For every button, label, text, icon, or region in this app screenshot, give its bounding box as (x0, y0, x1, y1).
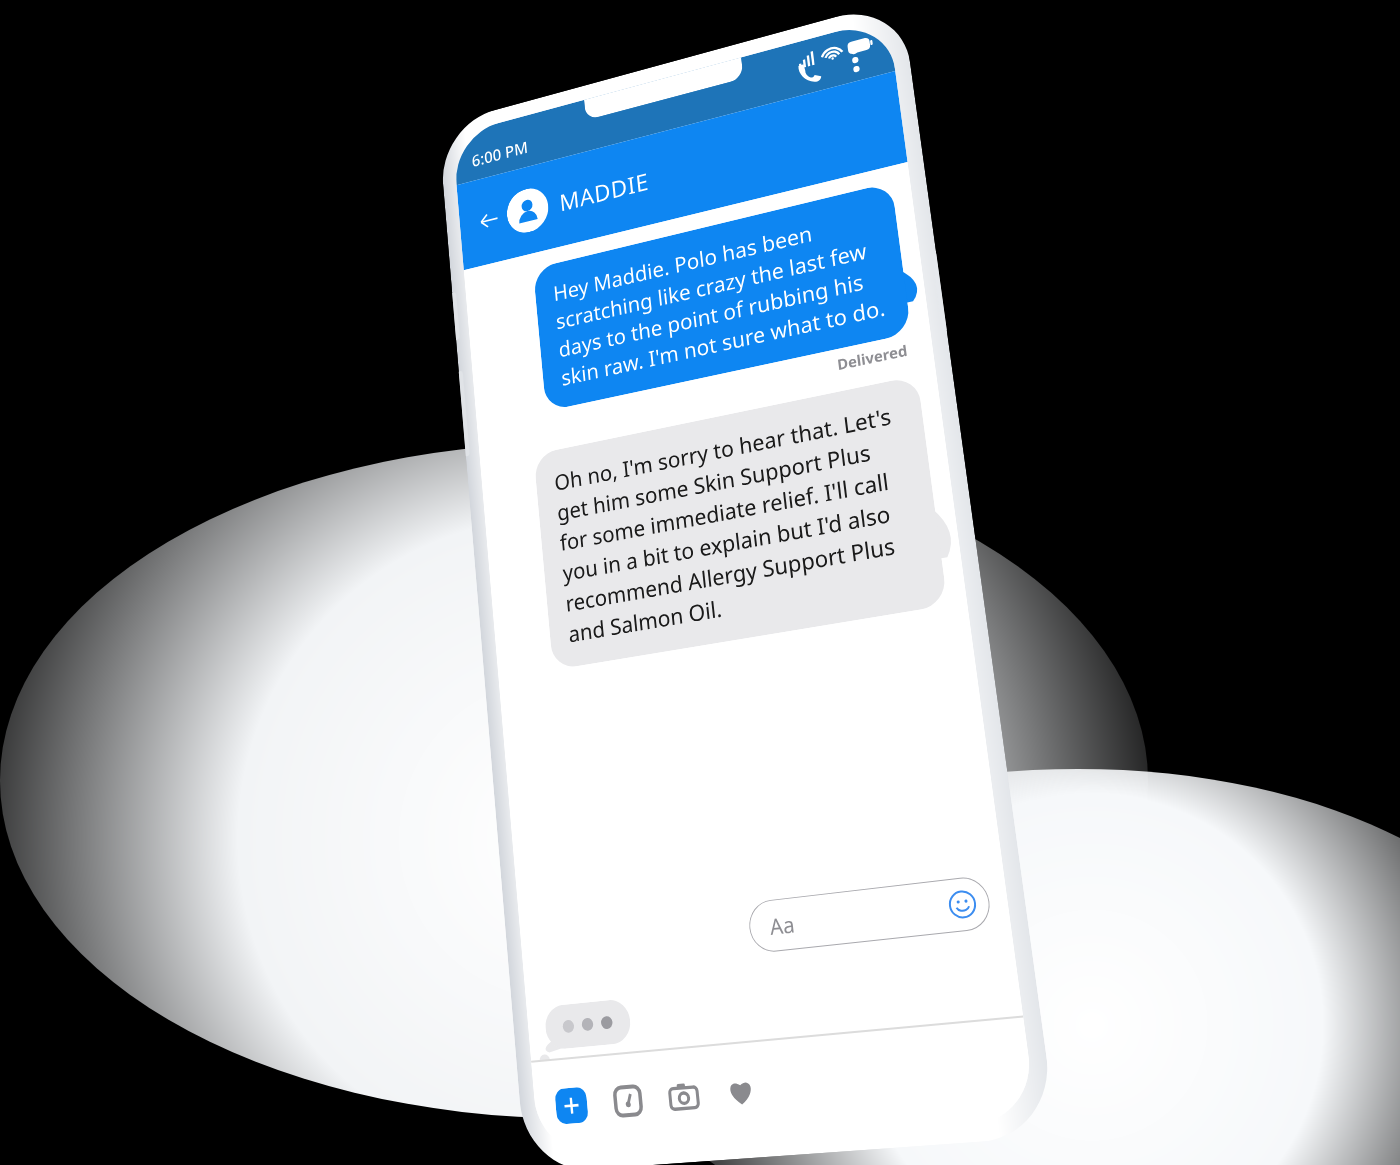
button[interactable]: Camera (664, 1075, 704, 1118)
button[interactable]: Oh no, I'm sorry to hear that. Let's get… (533, 375, 948, 670)
staticText: 6:00 PM (471, 136, 529, 172)
button[interactable]: Aa (747, 875, 993, 954)
staticText: MADDIE (558, 165, 650, 218)
staticText: Oh no, I'm sorry to hear that. Let's get… (553, 398, 924, 649)
staticText: Delivered (836, 340, 909, 375)
button[interactable]: MADDIE (505, 155, 662, 237)
button[interactable]: More actions (554, 1086, 589, 1125)
button[interactable]: Back (471, 199, 507, 242)
staticText: Aa (768, 908, 797, 941)
staticText: Hey Maddie. Polo has been scratching lik… (552, 203, 889, 392)
button[interactable]: More options (835, 38, 875, 82)
button[interactable]: Call (787, 48, 831, 96)
button[interactable]: Games (608, 1079, 648, 1122)
button[interactable]: Emoji (946, 887, 979, 921)
button[interactable]: Like (720, 1070, 762, 1113)
button[interactable]: Hey Maddie. Polo has been scratching lik… (533, 182, 912, 411)
